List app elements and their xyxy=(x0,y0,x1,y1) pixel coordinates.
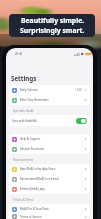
staticText: Settings xyxy=(11,74,37,82)
staticText: Rate MeAI in the App Store xyxy=(20,167,56,171)
staticText: Sync with HealthKit xyxy=(12,119,38,123)
button[interactable]: Recommend MeAI to a friend xyxy=(9,174,90,184)
button[interactable]: Daily Calories xyxy=(9,85,90,95)
button[interactable]: Rate MeAI in the App Store xyxy=(9,164,90,174)
button[interactable]: Restore Purchases xyxy=(9,144,90,154)
staticText: Show some love xyxy=(13,158,34,162)
button[interactable]: Follow @meAI_app xyxy=(9,184,90,194)
staticText: Follow @meAI_app xyxy=(20,187,45,191)
staticText: Surprisingly smart. xyxy=(20,26,85,35)
button[interactable]: Sync with HealthKit xyxy=(9,115,90,126)
button[interactable]: Beautifully simple. xyxy=(9,14,95,37)
staticText: Privacy & Terms xyxy=(13,198,34,202)
staticText: Help & Support xyxy=(20,137,41,141)
button[interactable]: Help & Support xyxy=(9,134,90,144)
staticText: Meal Time Reminders xyxy=(20,98,49,102)
staticText: Terms of Service xyxy=(20,215,42,219)
staticText: 1,800 xyxy=(75,88,82,92)
button[interactable]: Terms of Service xyxy=(9,214,90,219)
staticText: Recommend MeAI to a friend xyxy=(20,177,59,181)
staticText: MeAI Pro & Your Data xyxy=(20,207,49,211)
other: Toggle sync xyxy=(76,118,87,124)
staticText: Beautifully simple. xyxy=(21,16,85,25)
staticText: Sync with Health xyxy=(13,109,34,113)
button[interactable]: Meal Time Reminders xyxy=(9,95,90,105)
button[interactable]: MeAI Pro & Your Data xyxy=(9,204,90,214)
staticText: Daily Calories xyxy=(20,88,38,92)
staticText: Restore Purchases xyxy=(20,147,45,151)
staticText: 20:46 xyxy=(15,52,23,56)
